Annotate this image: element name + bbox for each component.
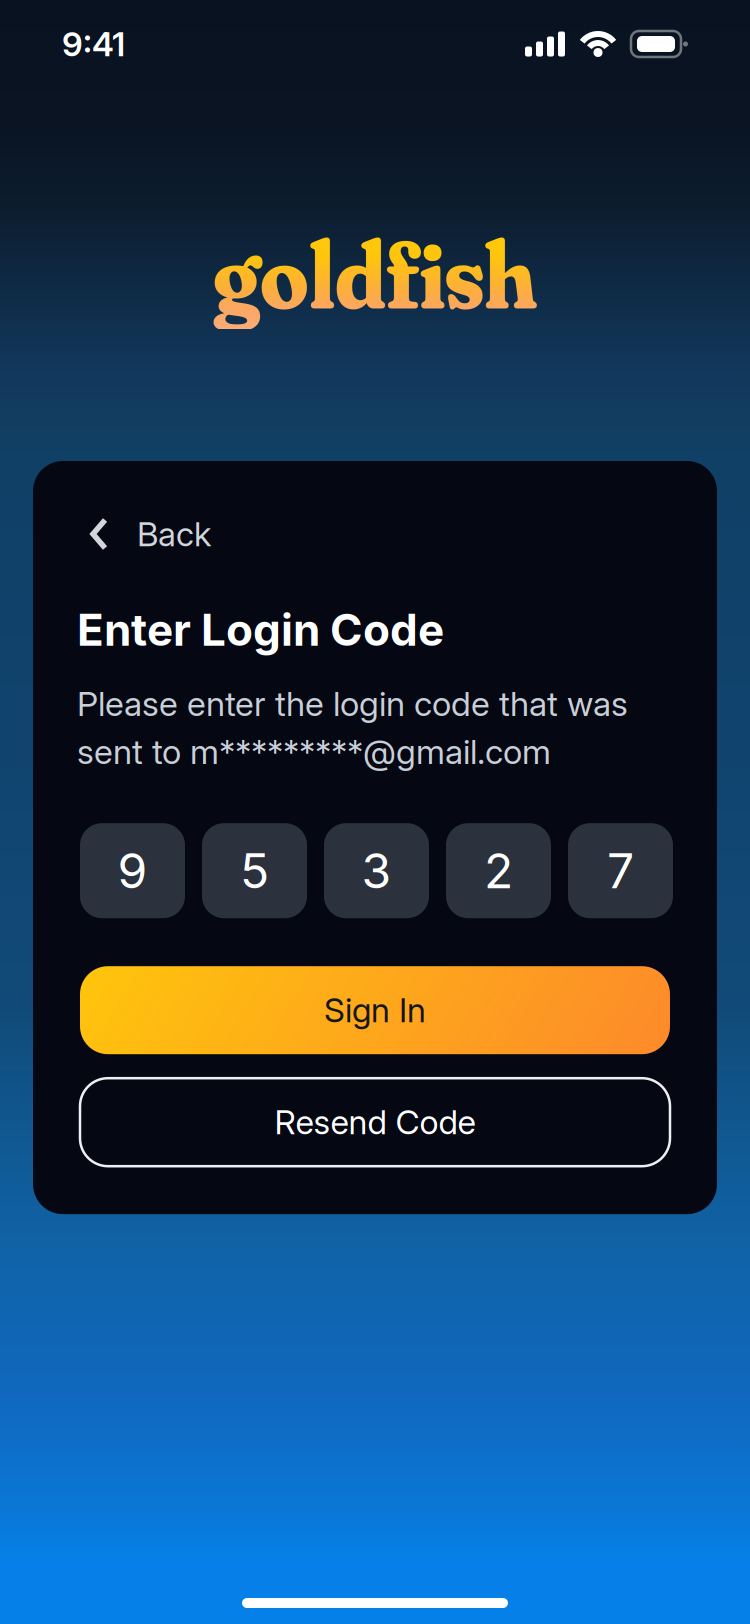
staticText: Enter Login Code bbox=[77, 603, 444, 656]
staticText: 5 bbox=[240, 842, 269, 900]
staticText: Resend Code bbox=[274, 1102, 475, 1142]
staticText: Back bbox=[137, 514, 211, 554]
staticText: 9 bbox=[117, 842, 147, 900]
staticText: sent to m*********@gmail.com bbox=[77, 731, 551, 772]
staticText: Sign In bbox=[324, 990, 426, 1030]
button[interactable]: Resend Code bbox=[80, 1078, 670, 1166]
staticText: 3 bbox=[361, 842, 391, 900]
staticText: 9:41 bbox=[62, 24, 125, 64]
staticText: 7 bbox=[607, 842, 634, 900]
button[interactable]: Back bbox=[80, 512, 211, 556]
staticText: Please enter the login code that was bbox=[77, 683, 628, 724]
staticText: 2 bbox=[484, 842, 513, 900]
button[interactable]: Sign In bbox=[80, 966, 670, 1054]
